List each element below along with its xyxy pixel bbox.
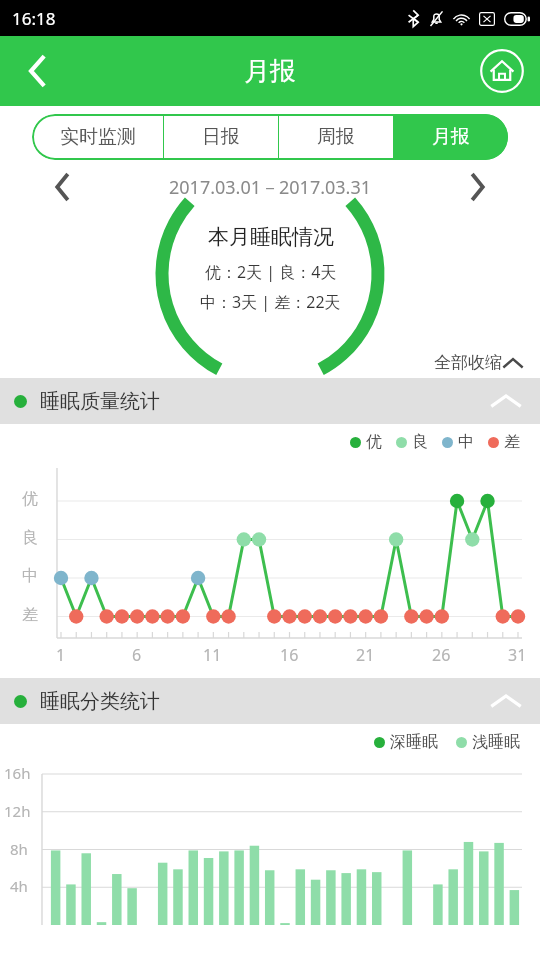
button[interactable]: Next month: [456, 168, 498, 206]
staticText: 31: [508, 644, 527, 666]
button[interactable]: 周报: [278, 114, 393, 160]
staticText: 优: [366, 432, 382, 452]
staticText: 差: [504, 432, 520, 452]
staticText: 21: [356, 644, 375, 666]
staticText: 月报: [432, 125, 470, 149]
staticText: 全部收缩: [434, 352, 502, 373]
staticText: 优: [22, 489, 38, 509]
staticText: 中: [22, 566, 38, 586]
button[interactable]: 全部收缩: [434, 352, 524, 373]
staticText: 本月睡眠情况: [208, 224, 334, 250]
staticText: 8h: [10, 839, 28, 859]
staticText: 差: [22, 605, 38, 625]
button[interactable]: Home: [478, 47, 526, 95]
staticText: 16:18: [12, 7, 56, 30]
staticText: 中: [458, 432, 474, 452]
staticText: 16: [280, 644, 299, 666]
staticText: 2017.03.01－2017.03.31: [169, 175, 372, 200]
staticText: 睡眠分类统计: [40, 689, 160, 714]
staticText: 中：3天 | 差：22天: [200, 291, 341, 313]
staticText: 睡眠质量统计: [40, 389, 160, 414]
staticText: 月报: [244, 55, 296, 88]
button[interactable]: Previous month: [42, 168, 84, 206]
staticText: 实时监测: [60, 125, 136, 149]
staticText: 周报: [317, 125, 355, 149]
staticText: 11: [203, 644, 222, 666]
staticText: 12h: [4, 801, 31, 821]
button[interactable]: 睡眠分类统计: [0, 678, 540, 724]
button[interactable]: 睡眠质量统计: [0, 378, 540, 424]
staticText: 26: [432, 644, 451, 666]
button[interactable]: Back: [10, 43, 66, 99]
staticText: 日报: [202, 125, 240, 149]
staticText: 6: [132, 644, 142, 666]
staticText: 良: [22, 528, 38, 548]
staticText: 4h: [10, 876, 28, 896]
staticText: 深睡眠: [390, 732, 438, 752]
button[interactable]: 月报: [393, 114, 508, 160]
button[interactable]: 日报: [163, 114, 278, 160]
button[interactable]: 实时监测: [32, 114, 163, 160]
staticText: 浅睡眠: [472, 732, 520, 752]
staticText: 良: [412, 432, 428, 452]
staticText: 优：2天 | 良：4天: [205, 261, 337, 283]
staticText: 16h: [4, 763, 31, 783]
staticText: 1: [56, 644, 66, 666]
